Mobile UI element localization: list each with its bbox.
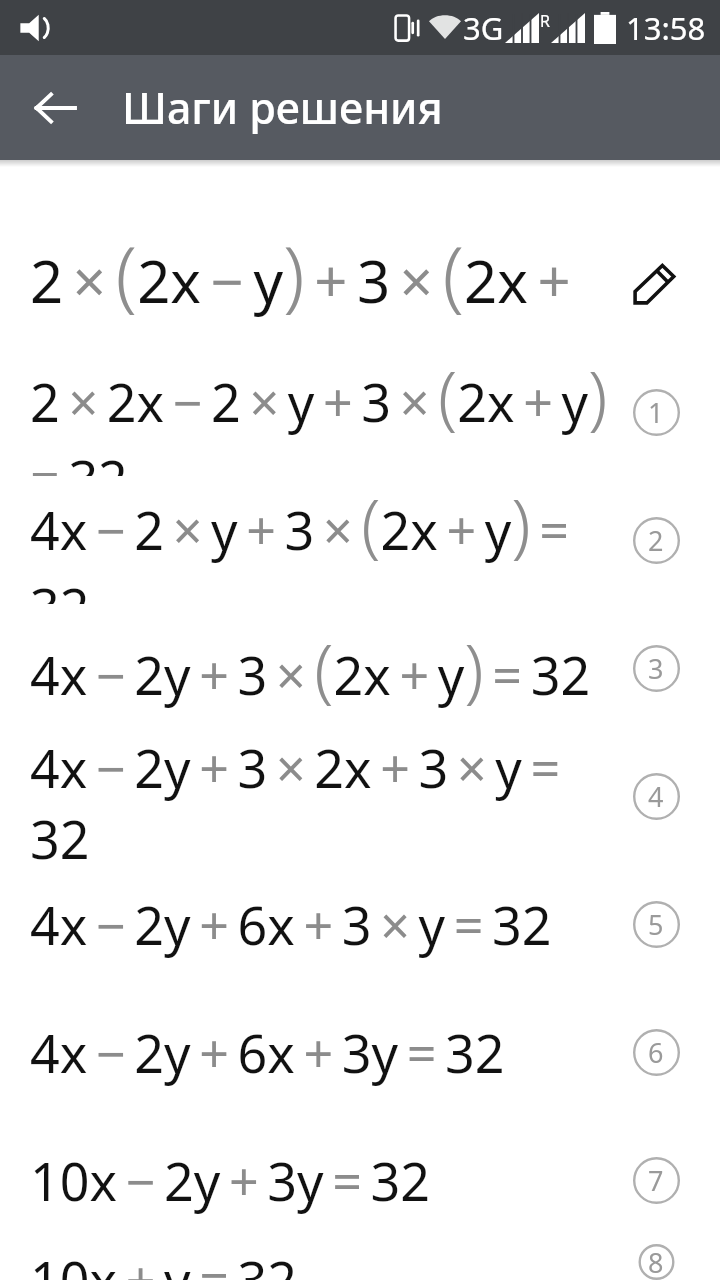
button[interactable]: 4x − 2y + 6x + 3y = 32 [0, 988, 720, 1116]
button[interactable]: 2 [625, 509, 687, 571]
button[interactable]: 10x − 2y + 3y = 32 [0, 1116, 720, 1244]
staticText: 3G [463, 7, 504, 49]
staticText: Шаги решения [122, 78, 443, 137]
staticText: R [540, 10, 550, 32]
staticText: 2 [648, 522, 664, 559]
button[interactable]: 4 [625, 765, 687, 827]
button[interactable]: Редактировать [621, 251, 687, 317]
staticText: 2 × (2x − y) + 3 × (2x + y) = 32 [30, 220, 610, 348]
button[interactable]: 2 × 2x − 2 × y + 3 × (2x + y) = 32 [0, 348, 720, 476]
staticText: 7 [648, 1162, 664, 1199]
button[interactable]: 4x − 2 × y + 3 × (2x + y) = 32 [0, 476, 720, 604]
staticText: 13:58 [626, 7, 706, 49]
button[interactable]: 5 [625, 893, 687, 955]
staticText: 3 [648, 650, 664, 687]
staticText: 4x − 2y + 3 × (2x + y) = 32 [30, 621, 591, 716]
staticText: 4x − 2y + 3 × 2x + 3 × y = 32 [30, 732, 610, 860]
staticText: 1 [648, 394, 664, 431]
staticText: 8 [648, 1244, 664, 1280]
staticText: 2 × 2x − 2 × y + 3 × (2x + y) = 32 [30, 348, 610, 476]
button[interactable]: 10x + y = 32 [0, 1244, 720, 1280]
button[interactable]: 7 [625, 1149, 687, 1211]
button[interactable]: Назад [22, 75, 88, 141]
staticText: 4 [648, 778, 664, 815]
button[interactable]: 4x − 2y + 3 × 2x + 3 × y = 32 [0, 732, 720, 860]
staticText: 10x − 2y + 3y = 32 [30, 1145, 431, 1216]
staticText: 10x + y = 32 [30, 1244, 298, 1280]
staticText: 5 [648, 906, 664, 943]
button[interactable]: 4x − 2y + 3 × (2x + y) = 32 [0, 604, 720, 732]
staticText: 4x − 2y + 6x + 3y = 32 [30, 1017, 505, 1088]
staticText: 6 [648, 1034, 664, 1071]
staticText: 4x − 2 × y + 3 × (2x + y) = 32 [30, 476, 610, 604]
button[interactable]: 1 [625, 381, 687, 443]
staticText: 4x − 2y + 6x + 3 × y = 32 [30, 889, 552, 960]
button[interactable]: 3 [625, 637, 687, 699]
button[interactable]: 6 [625, 1021, 687, 1083]
button[interactable]: 8 [625, 1244, 687, 1280]
button[interactable]: 4x − 2y + 6x + 3 × y = 32 [0, 860, 720, 988]
button[interactable]: 2 × (2x − y) + 3 × (2x + y) = 32 [0, 220, 720, 348]
